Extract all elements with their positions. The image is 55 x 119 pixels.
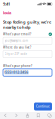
staticText: lovia — [3, 10, 11, 15]
staticText: you@example.com — [5, 39, 28, 43]
button[interactable]: Forward — [11, 112, 22, 119]
staticText: Continue — [36, 105, 50, 108]
button[interactable]: Continue — [34, 102, 52, 110]
staticText: (555) 012-3456 — [5, 71, 29, 74]
button[interactable]: City or ZIP code — [3, 50, 52, 58]
button[interactable]: Back — [0, 112, 11, 119]
button[interactable]: Share — [22, 112, 33, 119]
staticText: What's your email? — [3, 32, 31, 36]
staticText: City or ZIP code — [5, 52, 28, 56]
button[interactable]: Bookmarks — [33, 112, 44, 119]
staticText: What's your phone? — [3, 64, 32, 68]
staticText: 9:41 — [3, 1, 10, 7]
button[interactable]: Tabs — [44, 112, 55, 119]
staticText: Where do you live? — [3, 46, 31, 49]
staticText: Stop feeling guilty, we're nearby to hel… — [3, 19, 51, 30]
button[interactable]: (555) 012-3456 — [3, 69, 52, 76]
button[interactable]: you@example.com — [3, 37, 52, 44]
